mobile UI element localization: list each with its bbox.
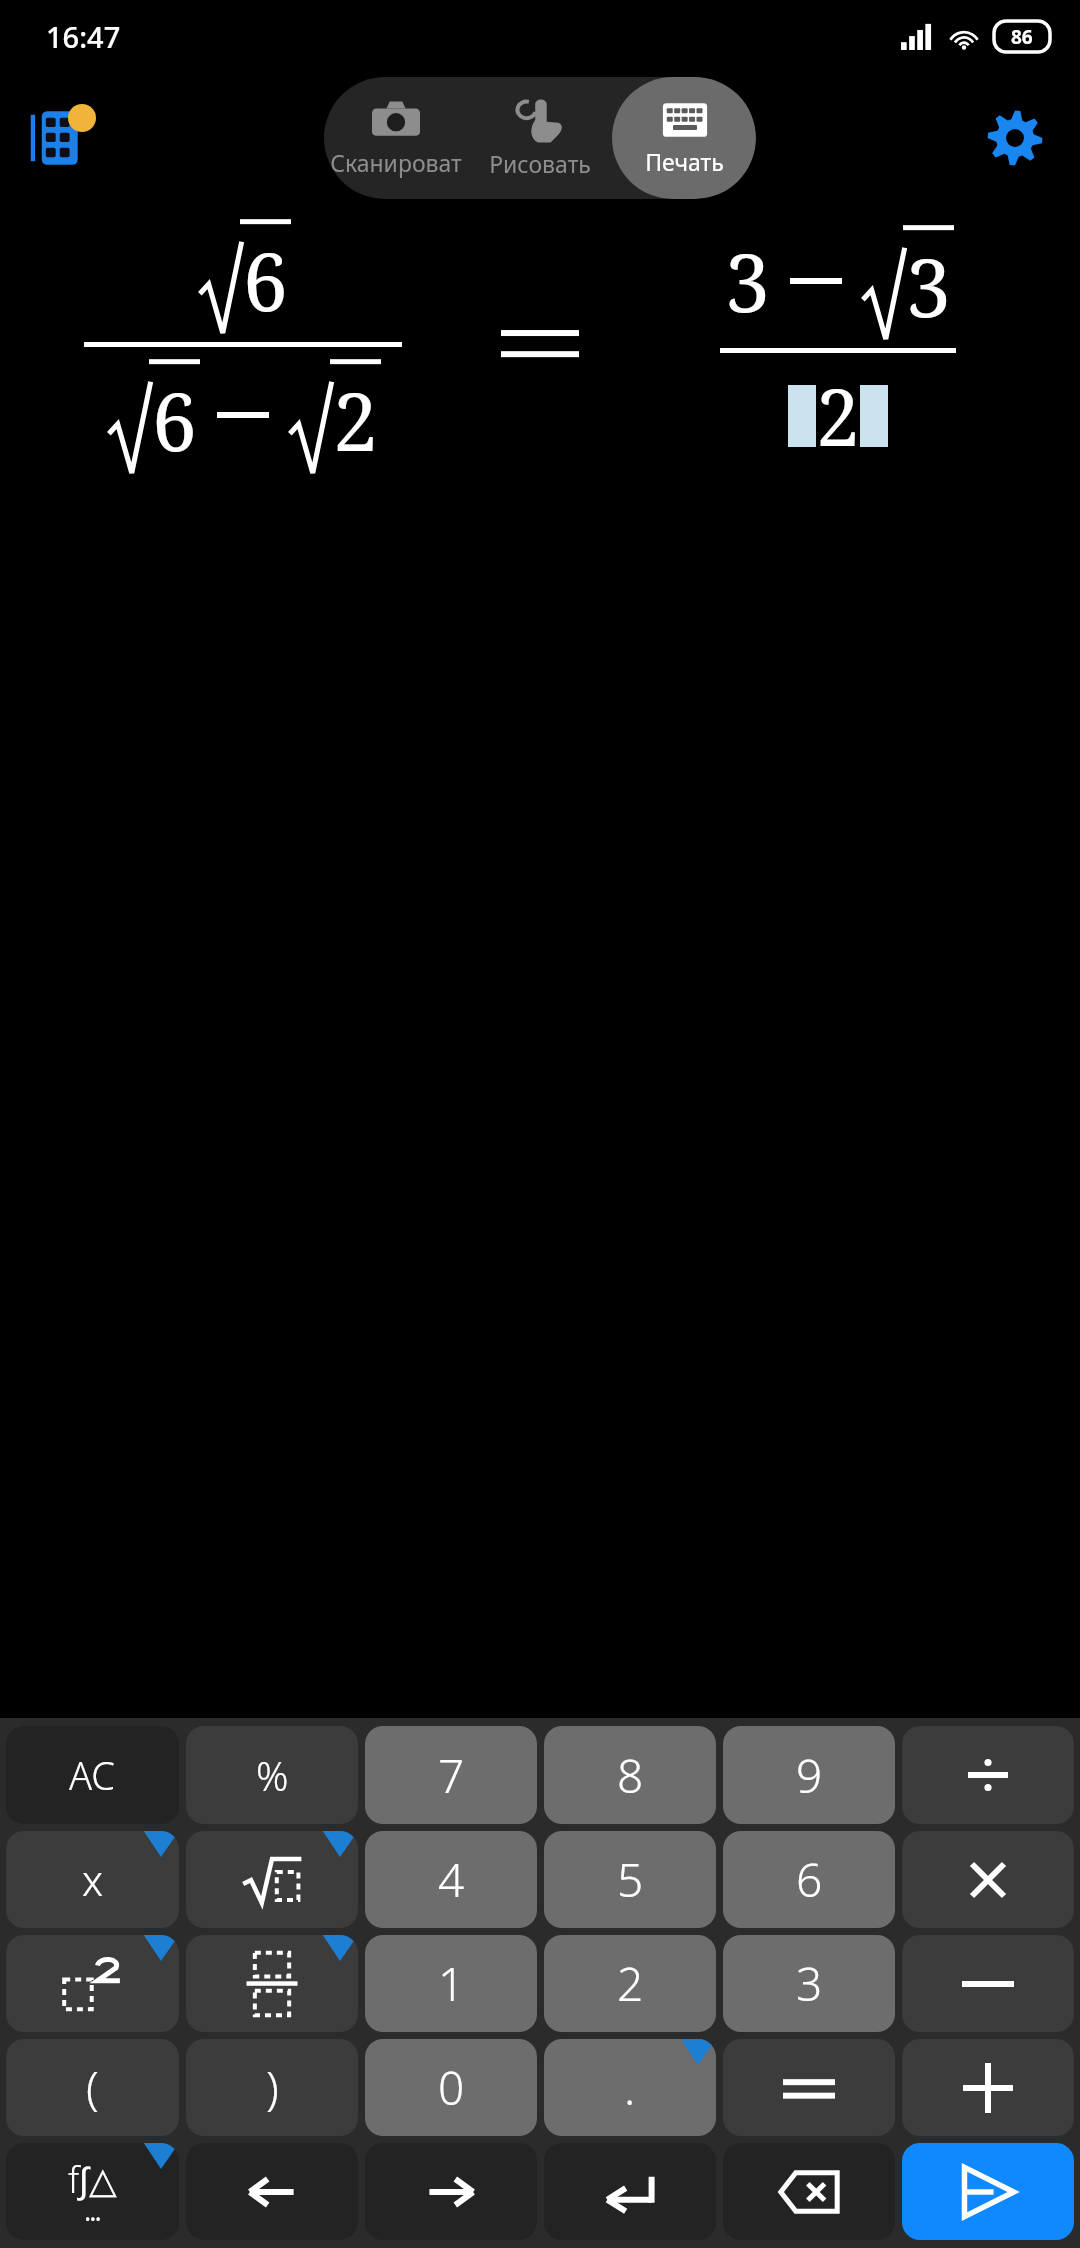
staticText: f∫△ xyxy=(68,2155,117,2204)
button[interactable]: 5 xyxy=(544,1831,716,1928)
button[interactable]: Equals xyxy=(723,2039,895,2136)
staticText: 5 xyxy=(617,1848,644,1911)
staticText: AC xyxy=(69,1749,116,1801)
staticText: 7 xyxy=(438,1744,465,1807)
button[interactable]: Enter xyxy=(544,2143,716,2240)
button[interactable]: Fraction xyxy=(186,1935,358,2032)
button[interactable]: 2 xyxy=(544,1935,716,2032)
staticText: 1 xyxy=(438,1952,465,2015)
staticText: % xyxy=(256,1748,289,1802)
staticText: 6 xyxy=(243,225,288,334)
button[interactable]: AC xyxy=(6,1726,179,1824)
button[interactable]: % xyxy=(186,1726,358,1824)
staticText: ) xyxy=(266,2056,279,2119)
button[interactable]: Send xyxy=(902,2143,1074,2240)
button[interactable]: Divide xyxy=(902,1726,1074,1824)
button[interactable]: ) xyxy=(186,2039,358,2136)
button[interactable]: Power xyxy=(6,1935,179,2032)
staticText: ••• xyxy=(85,2210,101,2229)
staticText: 4 xyxy=(438,1848,465,1911)
button[interactable]: ( xyxy=(6,2039,179,2136)
button[interactable]: Сканировать xyxy=(324,77,468,199)
staticText: 3 xyxy=(906,231,951,340)
button[interactable]: 3 xyxy=(723,1935,895,2032)
staticText: 9 xyxy=(796,1744,823,1807)
button[interactable]: Left xyxy=(186,2143,358,2240)
staticText: . xyxy=(624,2056,636,2119)
button[interactable]: 0 xyxy=(365,2039,537,2136)
button[interactable]: Settings xyxy=(974,97,1056,179)
button[interactable]: x xyxy=(6,1831,179,1928)
staticText: 6 xyxy=(152,365,197,474)
staticText: ( xyxy=(86,2056,99,2119)
button[interactable]: 7 xyxy=(365,1726,537,1824)
button[interactable]: Multiply xyxy=(902,1831,1074,1928)
button[interactable]: Minus xyxy=(902,1935,1074,2032)
button[interactable]: Рисовать xyxy=(468,77,612,199)
staticText: 6 xyxy=(796,1848,823,1911)
button[interactable]: History xyxy=(14,94,102,182)
staticText: Сканировать xyxy=(324,147,468,178)
button[interactable]: . xyxy=(544,2039,716,2136)
button[interactable]: Square root xyxy=(186,1831,358,1928)
staticText: x xyxy=(82,1851,104,1908)
staticText: 86 xyxy=(1011,24,1033,50)
staticText: 16:47 xyxy=(46,17,121,56)
staticText: 3 xyxy=(725,226,770,335)
staticText: Рисовать xyxy=(489,148,591,179)
staticText: 8 xyxy=(617,1744,644,1807)
staticText: 2 xyxy=(333,365,378,474)
staticText: 3 xyxy=(796,1952,823,2015)
staticText: Печать xyxy=(645,146,724,177)
button[interactable]: Functions xyxy=(6,2143,179,2240)
button[interactable]: 4 xyxy=(365,1831,537,1928)
button[interactable]: Plus xyxy=(902,2039,1074,2136)
staticText: 2 xyxy=(617,1952,644,2015)
button[interactable]: Печать xyxy=(612,77,756,199)
staticText: 2 xyxy=(816,363,860,469)
button[interactable]: Delete xyxy=(723,2143,895,2240)
button[interactable]: Right xyxy=(365,2143,537,2240)
button[interactable]: 6 xyxy=(723,1831,895,1928)
button[interactable]: 9 xyxy=(723,1726,895,1824)
button[interactable]: 1 xyxy=(365,1935,537,2032)
button[interactable]: 8 xyxy=(544,1726,716,1824)
staticText: 0 xyxy=(438,2056,465,2119)
